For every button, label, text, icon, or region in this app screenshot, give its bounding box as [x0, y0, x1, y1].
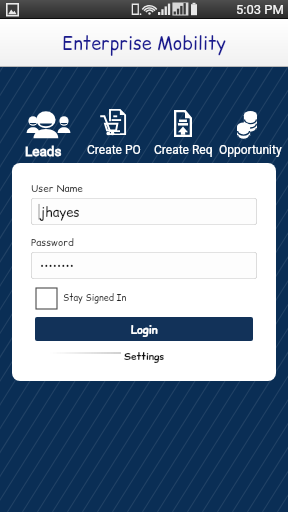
staticText: ••••••••	[40, 258, 75, 273]
button[interactable]: ••••••••	[31, 252, 257, 279]
staticText: Leads	[25, 143, 62, 159]
staticText: 5:03 PM	[236, 2, 284, 17]
button[interactable]: Login	[35, 317, 253, 341]
staticText: Create PO	[87, 143, 141, 157]
button[interactable]: Opportunity	[214, 67, 286, 163]
staticText: Enterprise Mobility	[62, 31, 226, 56]
button[interactable]: Create Req	[147, 67, 219, 163]
staticText: Opportunity	[219, 143, 282, 157]
button[interactable]: jhayes	[31, 198, 257, 225]
button[interactable]: Stay Signed In	[31, 288, 127, 309]
staticText: User Name	[31, 181, 83, 195]
staticText: jhayes	[40, 203, 80, 221]
staticText: Stay Signed In	[63, 292, 127, 305]
button[interactable]: Create PO	[78, 67, 150, 163]
button[interactable]: Leads	[7, 67, 79, 163]
staticText: Login	[131, 322, 158, 337]
button[interactable]: Settings	[124, 349, 165, 363]
staticText: Create Req	[154, 143, 213, 157]
staticText: Password	[31, 235, 74, 249]
